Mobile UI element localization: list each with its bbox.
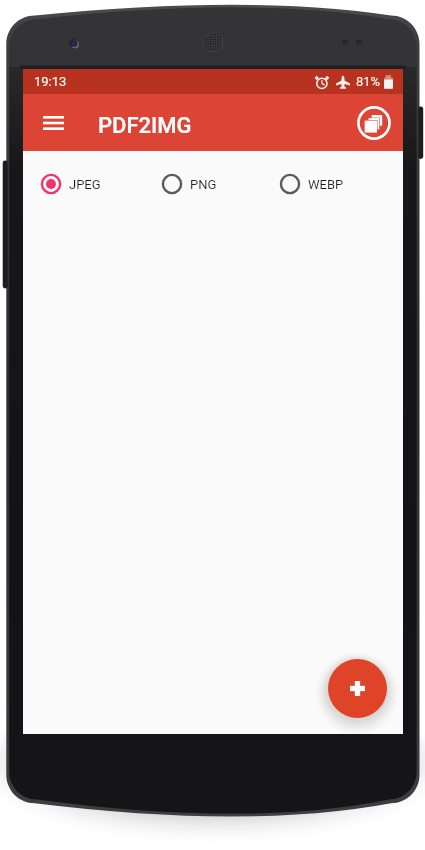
staticText: WEBP bbox=[308, 177, 344, 192]
staticText: PNG bbox=[190, 177, 217, 192]
button[interactable]: JPEG bbox=[40, 173, 101, 195]
button[interactable]: Add PDF bbox=[328, 659, 387, 718]
button[interactable]: PNG bbox=[161, 173, 217, 195]
button[interactable]: WEBP bbox=[279, 173, 344, 195]
staticText: JPEG bbox=[69, 177, 101, 192]
button[interactable]: Open navigation drawer bbox=[32, 99, 75, 147]
staticText: 19:13 bbox=[34, 74, 67, 89]
staticText: 81% bbox=[356, 74, 381, 89]
staticText: PDF2IMG bbox=[98, 113, 192, 139]
button[interactable]: Select pages bbox=[355, 104, 393, 142]
